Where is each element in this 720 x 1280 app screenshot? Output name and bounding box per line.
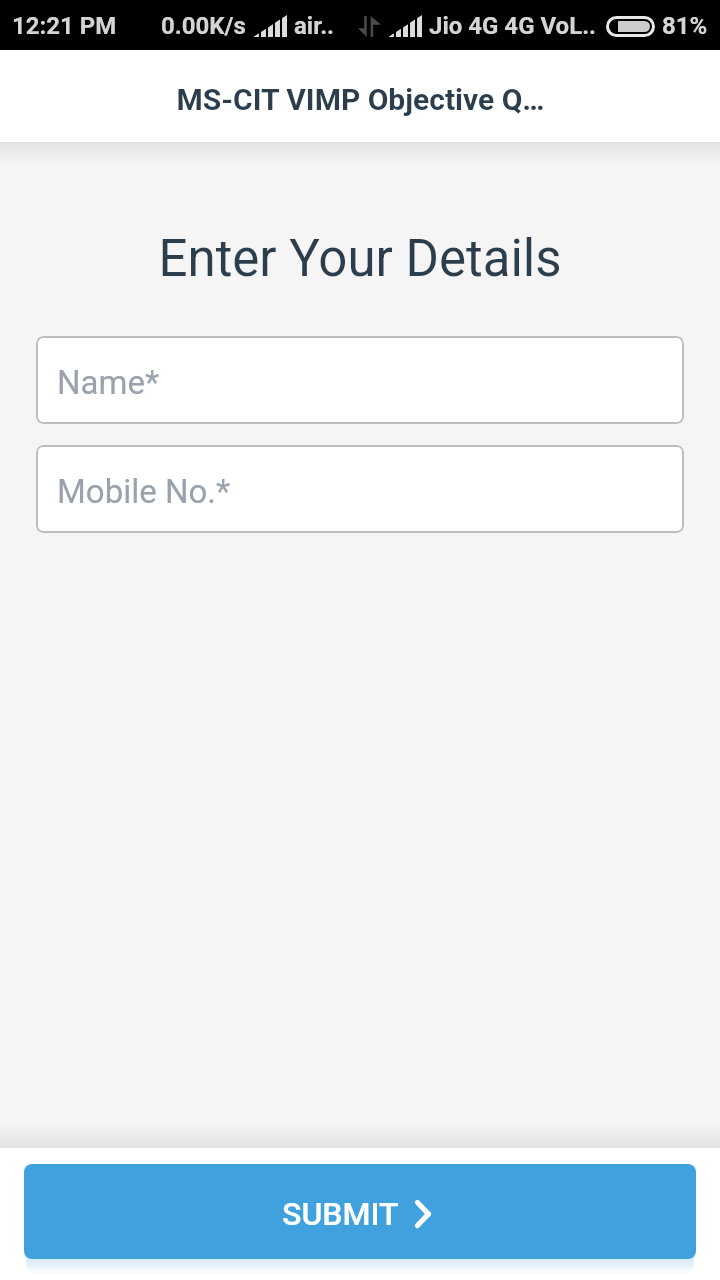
staticText: 0.00K/s xyxy=(161,12,246,40)
staticText: Mobile No.* xyxy=(57,472,231,511)
other: Signal strength xyxy=(254,15,287,37)
button[interactable]: SUBMIT xyxy=(24,1164,696,1259)
button[interactable]: Mobile No.* xyxy=(36,445,684,533)
staticText: SUBMIT xyxy=(282,1195,399,1233)
staticText: Enter Your Details xyxy=(0,229,720,289)
staticText: 81% xyxy=(662,12,708,40)
staticText: Name* xyxy=(57,363,160,402)
staticText: air.. xyxy=(294,12,335,40)
staticText: 12:21 PM xyxy=(12,12,117,40)
other: Mobile data activity xyxy=(358,16,381,37)
staticText: MS-CIT VIMP Objective Q… xyxy=(176,82,545,117)
staticText: Jio 4G 4G VoL.. xyxy=(429,12,597,40)
button[interactable]: Name* xyxy=(36,336,684,424)
other: Battery 81 percent xyxy=(606,16,655,37)
other: Continue xyxy=(415,1200,431,1228)
other: Signal strength xyxy=(389,15,422,37)
